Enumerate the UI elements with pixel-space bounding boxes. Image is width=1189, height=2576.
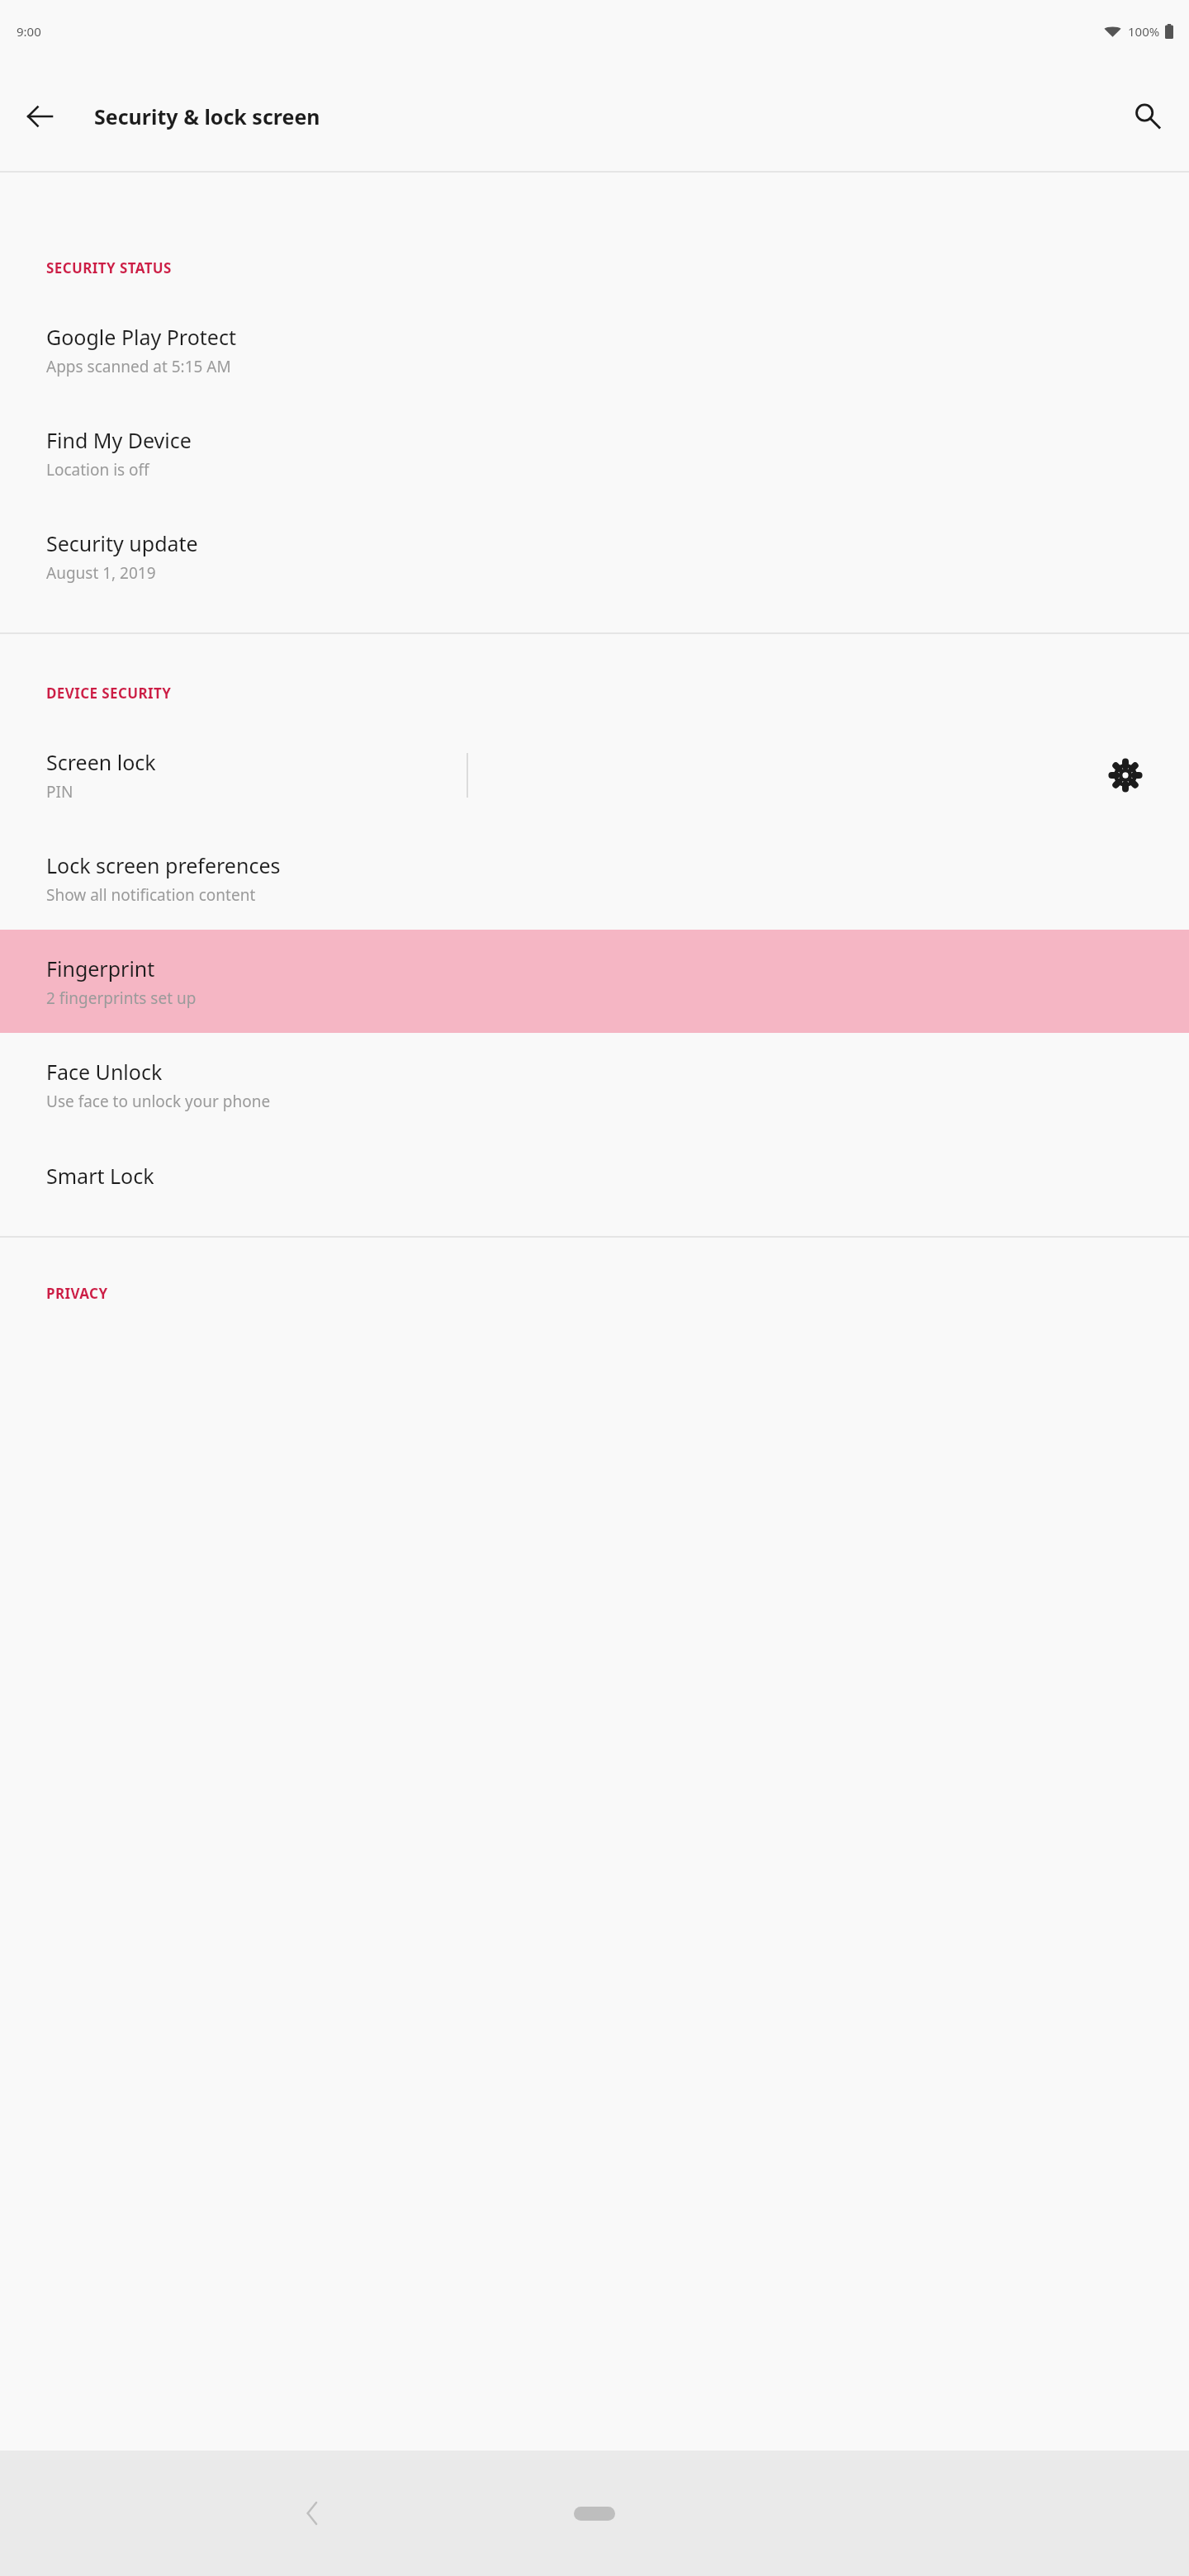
button[interactable]: Security update <box>0 504 1189 608</box>
staticText: Smart Lock <box>46 1162 154 1190</box>
staticText: Find My Device <box>46 426 192 454</box>
staticText: 100% <box>1128 23 1160 40</box>
staticText: Security & lock screen <box>94 102 320 130</box>
staticText: Show all notification content <box>46 884 256 906</box>
button[interactable]: Search <box>1125 93 1171 140</box>
staticText: Google Play Protect <box>46 323 236 351</box>
staticText: 2 fingerprints set up <box>46 987 197 1009</box>
staticText: Lock screen preferences <box>46 851 281 879</box>
button[interactable]: Fingerprint <box>0 930 1189 1033</box>
staticText: August 1, 2019 <box>46 562 156 584</box>
button[interactable]: Google Play Protect <box>0 298 1189 401</box>
button[interactable]: Face Unlock <box>0 1033 1189 1136</box>
staticText: Location is off <box>46 459 149 481</box>
staticText: Fingerprint <box>46 954 155 983</box>
button[interactable]: Find My Device <box>0 401 1189 504</box>
staticText: Use face to unlock your phone <box>46 1091 271 1112</box>
staticText: DEVICE SECURITY <box>46 684 172 703</box>
staticText: Face Unlock <box>46 1058 163 1086</box>
staticText: SECURITY STATUS <box>46 258 172 277</box>
button[interactable]: Back <box>272 2472 355 2555</box>
staticText: Screen lock <box>46 748 156 776</box>
staticText: PIN <box>46 781 73 803</box>
staticText: 9:00 <box>17 23 41 40</box>
button[interactable]: Home <box>553 2472 636 2555</box>
button[interactable]: Smart Lock <box>0 1136 1189 1215</box>
staticText: Apps scanned at 5:15 AM <box>46 356 231 377</box>
button[interactable]: Lock screen preferences <box>0 826 1189 930</box>
button[interactable]: Back <box>17 93 63 140</box>
button[interactable]: Screen lock settings <box>1095 745 1156 806</box>
staticText: Security update <box>46 529 198 557</box>
button[interactable]: Screen lock <box>0 723 940 826</box>
staticText: PRIVACY <box>46 1284 108 1303</box>
